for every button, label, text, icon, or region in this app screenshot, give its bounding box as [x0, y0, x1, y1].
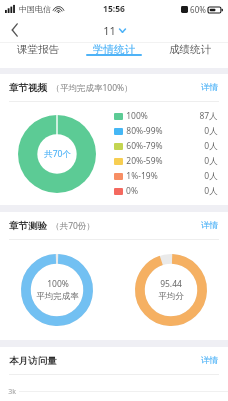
- staticText: 0人: [204, 155, 218, 167]
- staticText: 60%: [190, 4, 206, 15]
- staticText: 详情: [201, 220, 218, 231]
- staticText: 共70个: [44, 148, 71, 160]
- staticText: （共70份）: [51, 220, 95, 232]
- staticText: 详情: [201, 82, 218, 93]
- staticText: 平均完成率: [36, 291, 79, 302]
- button[interactable]: 详情: [200, 80, 219, 95]
- staticText: 章节视频: [9, 82, 47, 94]
- staticText: 100%: [126, 110, 148, 122]
- staticText: 1%-19%: [126, 170, 158, 182]
- staticText: 课堂报告: [17, 43, 59, 56]
- staticText: 0%: [126, 185, 138, 197]
- staticText: 章节测验: [9, 220, 47, 232]
- staticText: 0人: [204, 185, 218, 197]
- staticText: 详情: [201, 355, 218, 366]
- staticText: 成绩统计: [169, 43, 211, 56]
- staticText: 中国电信: [19, 4, 51, 14]
- button[interactable]: 课堂报告: [0, 43, 76, 56]
- staticText: 0人: [204, 140, 218, 152]
- staticText: 100%: [47, 278, 69, 290]
- staticText: 15:56: [103, 3, 125, 15]
- staticText: 本月访问量: [9, 355, 57, 367]
- staticText: 0人: [204, 170, 218, 182]
- staticText: 0人: [204, 125, 218, 137]
- staticText: 95.44: [160, 278, 182, 290]
- staticText: 87人: [199, 110, 218, 122]
- staticText: 学情统计: [93, 43, 135, 56]
- button[interactable]: 详情: [200, 218, 219, 233]
- staticText: 20%-59%: [126, 155, 163, 167]
- button[interactable]: 11: [103, 23, 126, 38]
- staticText: 3k: [8, 387, 16, 397]
- button[interactable]: 学情统计: [76, 43, 152, 56]
- button[interactable]: 成绩统计: [152, 43, 228, 56]
- staticText: 80%-99%: [126, 125, 163, 137]
- staticText: （平均完成率100%）: [51, 82, 133, 94]
- button[interactable]: Back: [0, 18, 30, 42]
- staticText: 11: [103, 23, 116, 38]
- staticText: 平均分: [158, 291, 184, 302]
- staticText: 60%-79%: [126, 140, 163, 152]
- button[interactable]: 详情: [200, 353, 219, 368]
